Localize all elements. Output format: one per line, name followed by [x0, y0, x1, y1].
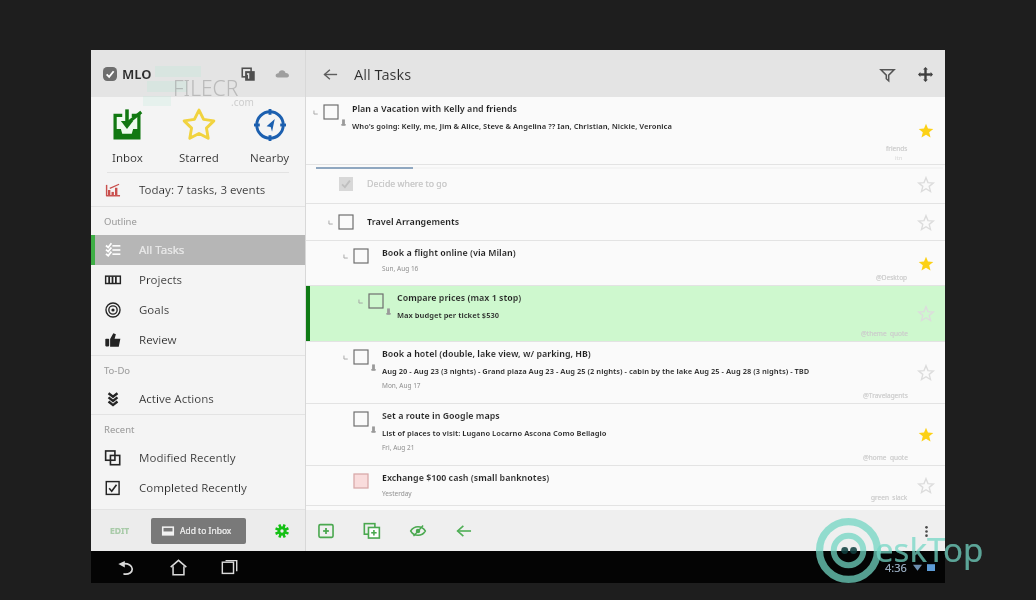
- button[interactable]: Review: [91, 325, 305, 355]
- button[interactable]: Star Plan a Vacation with Kelly and frie…: [911, 97, 945, 165]
- button[interactable]: Star Travel Arrangements: [911, 204, 945, 241]
- staticText: MLO: [122, 65, 152, 83]
- staticText: Fri, Aug 21: [382, 443, 415, 452]
- staticText: Nearby: [250, 150, 290, 166]
- button[interactable]: Star Set a route in Google maps: [911, 404, 945, 466]
- button[interactable]: Complete Book a flight online (via Milan…: [352, 247, 370, 265]
- staticText: Recent: [104, 423, 135, 436]
- staticText: .com: [231, 95, 254, 109]
- button[interactable]: Add to Inbox: [151, 518, 246, 544]
- button[interactable]: Goals: [91, 295, 305, 325]
- staticText: Decide where to go: [367, 178, 448, 190]
- button[interactable]: Active Actions: [91, 384, 305, 414]
- button[interactable]: Starred: [163, 97, 234, 172]
- button[interactable]: Back: [450, 517, 478, 545]
- staticText: Set a route in Google maps: [382, 410, 500, 422]
- button[interactable]: Move: [909, 58, 941, 90]
- button[interactable]: Cloud sync: [271, 63, 293, 85]
- button[interactable]: Today: 7 tasks, 3 events: [91, 173, 305, 206]
- button[interactable]: Star Compare prices (max 1 stop): [911, 286, 945, 342]
- button[interactable]: Nearby: [234, 97, 305, 172]
- button[interactable]: Complete Book a flight online (via Milan…: [306, 241, 945, 286]
- button[interactable]: Home: [161, 551, 195, 583]
- staticText: All Tasks: [354, 64, 412, 84]
- button[interactable]: Complete Travel Arrangements: [337, 213, 355, 231]
- staticText: List of places to visit: Lugano Locarno …: [382, 428, 607, 438]
- staticText: To-Do: [104, 364, 131, 377]
- button[interactable]: Modified Recently: [91, 443, 305, 473]
- button[interactable]: Star Decide where to go: [911, 165, 945, 204]
- button[interactable]: Completed Recently: [91, 473, 305, 503]
- staticText: Aug 20 - Aug 23 (3 nights) - Grand plaza…: [382, 366, 810, 376]
- button[interactable]: More options: [911, 516, 941, 546]
- button[interactable]: Filter: [871, 58, 903, 90]
- button[interactable]: Inbox: [91, 97, 163, 172]
- staticText: itn: [895, 154, 903, 162]
- staticText: Today: 7 tasks, 3 events: [139, 182, 266, 198]
- button[interactable]: Complete Exchange $100 cash (small bankn…: [352, 472, 370, 490]
- button[interactable]: Settings: [267, 516, 297, 546]
- staticText: Add to Inbox: [180, 525, 232, 537]
- button[interactable]: Projects: [91, 265, 305, 295]
- button[interactable]: Complete Decide where to go: [337, 175, 355, 193]
- button[interactable]: EDIT: [103, 510, 137, 551]
- button[interactable]: Complete Plan a Vacation with Kelly and …: [306, 97, 945, 165]
- staticText: Exchange $100 cash (small banknotes): [382, 472, 550, 484]
- staticText: @home quote: [863, 453, 908, 462]
- staticText: Modified Recently: [139, 450, 236, 466]
- staticText: friends: [886, 144, 908, 153]
- staticText: Sun, Aug 16: [382, 264, 419, 273]
- staticText: Starred: [179, 150, 219, 166]
- staticText: FILECR: [173, 74, 239, 103]
- staticText: eskTop: [875, 527, 984, 572]
- staticText: Yesterday: [382, 489, 412, 498]
- button[interactable]: Star Book a hotel (double, lake view, w/…: [911, 342, 945, 404]
- staticText: Review: [139, 332, 177, 348]
- button[interactable]: Complete Book a hotel (double, lake view…: [352, 348, 370, 366]
- button[interactable]: Complete Plan a Vacation with Kelly and …: [322, 103, 340, 121]
- staticText: @Travelagents: [863, 391, 908, 400]
- staticText: Inbox: [112, 150, 143, 166]
- staticText: Outline: [104, 215, 137, 228]
- staticText: Who's going: Kelly, me, Jim & Alice, Ste…: [352, 121, 672, 131]
- staticText: @Desktop: [876, 273, 908, 282]
- staticText: Book a flight online (via Milan): [382, 247, 516, 259]
- staticText: Mon, Aug 17: [382, 381, 421, 390]
- staticText: Max budget per ticket $530: [397, 310, 500, 320]
- button[interactable]: Back: [109, 551, 143, 583]
- button[interactable]: Back: [316, 60, 344, 88]
- button[interactable]: Complete Compare prices (max 1 stop): [367, 292, 385, 310]
- button[interactable]: Complete Compare prices (max 1 stop): [306, 286, 945, 342]
- staticText: All Tasks: [139, 242, 185, 258]
- button[interactable]: Complete Travel Arrangements: [306, 204, 945, 241]
- staticText: Compare prices (max 1 stop): [397, 292, 522, 304]
- staticText: Completed Recently: [139, 480, 247, 496]
- button[interactable]: Recent apps: [213, 551, 247, 583]
- button[interactable]: Add subtask: [358, 517, 386, 545]
- button[interactable]: Complete Set a route in Google maps: [352, 410, 370, 428]
- staticText: EDIT: [110, 525, 130, 537]
- button[interactable]: Complete Book a hotel (double, lake view…: [306, 342, 945, 404]
- staticText: 4:36: [885, 560, 907, 575]
- button[interactable]: Views: [237, 63, 259, 85]
- staticText: @theme quote: [861, 329, 908, 338]
- button[interactable]: Preview: [404, 517, 432, 545]
- staticText: green slack: [871, 493, 908, 502]
- staticText: Active Actions: [139, 391, 214, 407]
- button[interactable]: Complete Exchange $100 cash (small bankn…: [306, 466, 945, 506]
- staticText: Projects: [139, 272, 183, 288]
- button[interactable]: Star Exchange $100 cash (small banknotes…: [911, 466, 945, 506]
- staticText: Book a hotel (double, lake view, w/ park…: [382, 348, 591, 360]
- staticText: Goals: [139, 302, 170, 318]
- staticText: Plan a Vacation with Kelly and friends: [352, 103, 517, 115]
- button[interactable]: Complete Decide where to go: [306, 165, 945, 204]
- button[interactable]: All Tasks: [91, 235, 305, 265]
- button[interactable]: Star Book a flight online (via Milan): [911, 241, 945, 286]
- button[interactable]: Add task: [312, 517, 340, 545]
- button[interactable]: Complete Set a route in Google maps: [306, 404, 945, 466]
- staticText: Travel Arrangements: [367, 216, 460, 228]
